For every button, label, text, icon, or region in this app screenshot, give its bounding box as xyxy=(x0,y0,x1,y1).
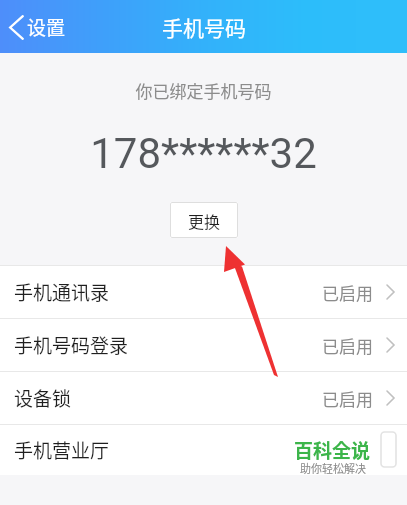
staticText: 178******32 xyxy=(0,129,407,178)
staticText: 百科全说 xyxy=(294,436,371,464)
button[interactable]: 更换 xyxy=(170,202,238,238)
staticText: 助你轻松解决 xyxy=(300,460,366,476)
staticText: 手机号码 xyxy=(162,12,246,42)
button[interactable]: 手机号码登录 xyxy=(0,319,407,371)
staticText: 你已绑定手机号码 xyxy=(0,78,407,103)
staticText: 手机营业厅 xyxy=(14,436,110,464)
staticText: 已启用 xyxy=(322,280,373,305)
staticText: 手机通讯录 xyxy=(14,278,110,306)
button[interactable]: 手机通讯录 xyxy=(0,266,407,318)
other: Back xyxy=(9,15,24,40)
staticText: 更换 xyxy=(188,209,221,232)
staticText: 设备锁 xyxy=(14,384,72,412)
button[interactable]: 手机营业厅 xyxy=(0,425,407,475)
staticText: 手机号码登录 xyxy=(14,331,129,359)
button[interactable]: 设备锁 xyxy=(0,372,407,424)
staticText: 已启用 xyxy=(322,386,373,411)
staticText: 已启用 xyxy=(322,333,373,358)
staticText: 设置 xyxy=(27,13,66,41)
button[interactable]: Back xyxy=(0,5,78,49)
